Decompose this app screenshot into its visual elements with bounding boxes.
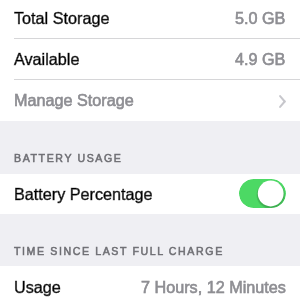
staticText: Manage Storage (14, 91, 134, 109)
staticText: 7 Hours, 12 Minutes (141, 278, 286, 296)
staticText: 5.0 GB (235, 9, 286, 27)
button[interactable]: Battery Percentage switch (239, 179, 286, 208)
staticText: 5.0 GB (235, 9, 286, 27)
staticText: Usage (14, 278, 61, 296)
staticText: 4.9 GB (235, 50, 286, 68)
staticText: Total Storage (14, 9, 110, 27)
staticText: TIME SINCE LAST FULL CHARGE (14, 245, 224, 257)
staticText: TIME SINCE LAST FULL CHARGE (14, 245, 224, 257)
button[interactable]: Usage (0, 266, 300, 300)
button[interactable]: Manage Storage (0, 79, 300, 121)
staticText: Manage Storage (14, 91, 134, 109)
staticText: Battery Percentage (14, 185, 153, 203)
button[interactable]: Available (0, 38, 300, 79)
staticText: Battery Percentage (14, 185, 153, 203)
staticText: BATTERY USAGE (14, 152, 123, 164)
staticText: Available (14, 50, 80, 68)
staticText: Usage (14, 278, 61, 296)
button[interactable]: Battery Percentage (0, 174, 300, 214)
staticText: 4.9 GB (235, 50, 286, 68)
staticText: Available (14, 50, 80, 68)
staticText: Total Storage (14, 9, 110, 27)
staticText: BATTERY USAGE (14, 152, 123, 164)
button[interactable]: Total Storage (0, 0, 300, 38)
staticText: 7 Hours, 12 Minutes (141, 278, 286, 296)
